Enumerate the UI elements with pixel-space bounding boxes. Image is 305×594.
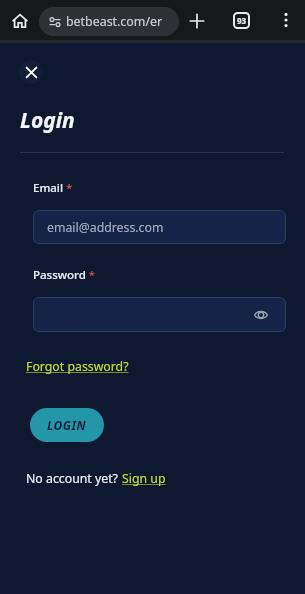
staticText: LOGIN	[47, 417, 87, 433]
staticText: No account yet?	[26, 470, 122, 487]
button[interactable]: Forgot password?	[26, 358, 129, 375]
button[interactable]	[11, 12, 29, 30]
staticText: 93	[237, 15, 247, 26]
staticText: betbeast.com/er	[66, 13, 163, 30]
button[interactable]: 93	[233, 12, 250, 29]
button[interactable]: LOGIN	[30, 408, 104, 442]
button[interactable]	[278, 12, 294, 28]
button[interactable]: email@address.com	[33, 210, 286, 244]
staticText: Password *	[33, 267, 96, 283]
staticText: Login	[20, 106, 75, 135]
staticText: Email *	[33, 180, 73, 196]
button[interactable]	[190, 14, 204, 28]
button[interactable]	[33, 297, 286, 332]
staticText: email@address.com	[47, 219, 164, 236]
button[interactable]: Sign up	[122, 470, 166, 487]
button[interactable]	[19, 60, 43, 84]
button[interactable]: betbeast.com/er	[39, 7, 179, 36]
